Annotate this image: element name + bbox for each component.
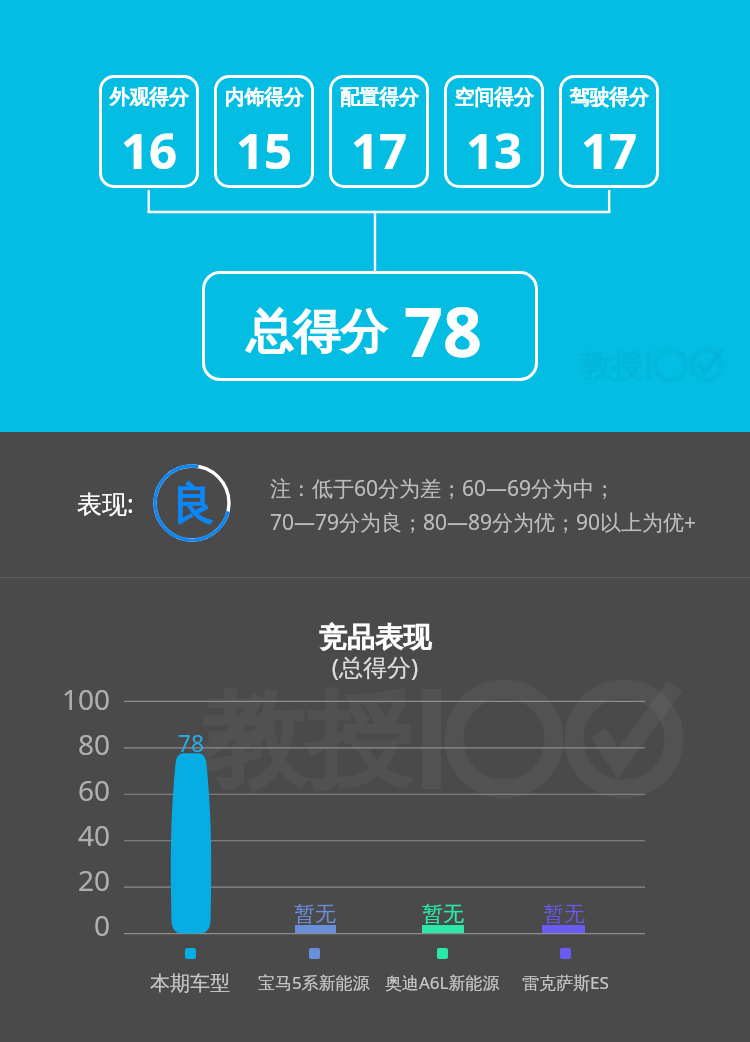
staticText: 空间得分 bbox=[444, 85, 544, 110]
staticText: 70—79分为良；80—89分为优；90以上为优+ bbox=[270, 508, 697, 537]
staticText: 总得分 bbox=[246, 303, 387, 362]
staticText: 配置得分 bbox=[329, 85, 429, 110]
button[interactable] bbox=[168, 750, 214, 937]
staticText: 15 bbox=[214, 117, 314, 184]
staticText: 教授 bbox=[200, 675, 412, 809]
staticText: 0 bbox=[94, 906, 111, 944]
staticText: 60 bbox=[78, 771, 111, 809]
staticText: 80 bbox=[78, 725, 111, 763]
staticText: 雷克萨斯ES bbox=[522, 971, 609, 994]
staticText: 78 bbox=[168, 727, 214, 758]
button[interactable]: 内饰得分 bbox=[214, 75, 314, 188]
staticText: 100 bbox=[62, 680, 111, 718]
staticText: 暂无 bbox=[225, 901, 405, 927]
button[interactable]: 总得分 bbox=[202, 271, 538, 381]
staticText: 78 bbox=[404, 284, 482, 377]
staticText: 17 bbox=[559, 117, 659, 184]
staticText: 表现: bbox=[77, 486, 134, 520]
staticText: 内饰得分 bbox=[214, 85, 314, 110]
staticText: 教授 bbox=[579, 346, 643, 386]
staticText: 暂无 bbox=[353, 901, 533, 927]
button[interactable]: 综合表现评级 良 bbox=[153, 464, 231, 542]
button[interactable]: 外观得分 bbox=[99, 75, 199, 188]
staticText: (总得分) bbox=[0, 650, 750, 683]
button[interactable]: 雷克萨斯ES bbox=[475, 948, 655, 994]
staticText: 16 bbox=[99, 117, 199, 184]
staticText: 暂无 bbox=[474, 901, 654, 927]
staticText: 本期车型 bbox=[150, 971, 230, 996]
button[interactable]: 奥迪A6L新能源 bbox=[352, 948, 532, 994]
button[interactable]: 空间得分 bbox=[444, 75, 544, 188]
button[interactable]: 驾驶得分 bbox=[559, 75, 659, 188]
staticText: 宝马5系新能源 bbox=[258, 971, 370, 994]
staticText: 竞品表现 bbox=[0, 620, 750, 655]
button[interactable]: 宝马5系新能源 bbox=[224, 948, 404, 994]
staticText: 良 bbox=[171, 478, 214, 532]
staticText: 驾驶得分 bbox=[559, 85, 659, 110]
button[interactable]: 本期车型 bbox=[100, 948, 280, 996]
staticText: 17 bbox=[329, 117, 429, 184]
staticText: 20 bbox=[78, 861, 111, 899]
staticText: 注：低于60分为差；60—69分为中； bbox=[270, 474, 616, 503]
staticText: 外观得分 bbox=[99, 85, 199, 110]
button[interactable]: 配置得分 bbox=[329, 75, 429, 188]
staticText: 13 bbox=[444, 117, 544, 184]
staticText: 奥迪A6L新能源 bbox=[385, 971, 500, 994]
staticText: 40 bbox=[78, 816, 111, 854]
